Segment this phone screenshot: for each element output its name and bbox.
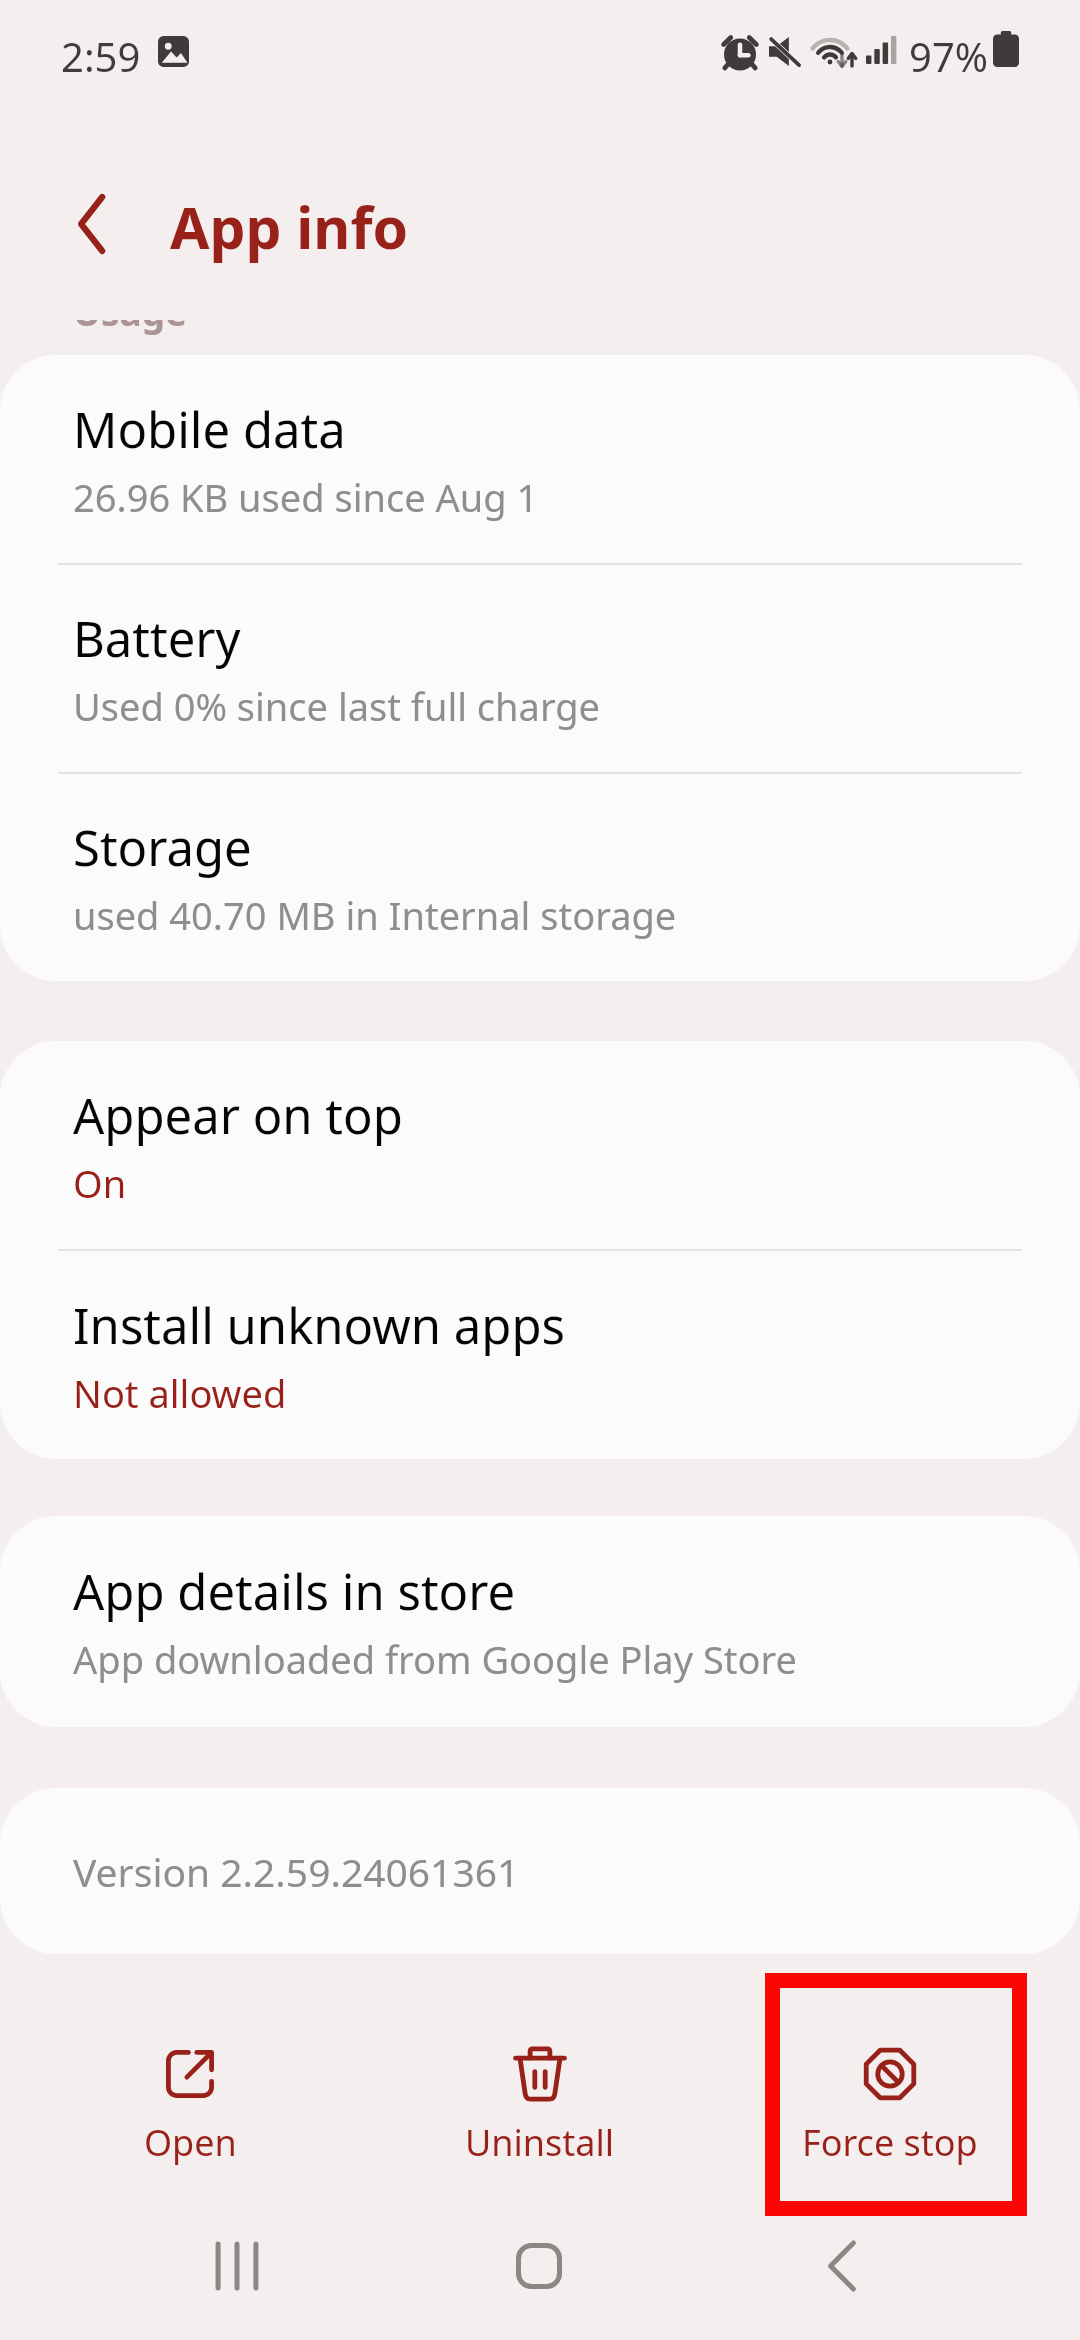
staticText: 26.96 KB used since Aug 1 bbox=[73, 471, 539, 523]
button[interactable]: Recent apps bbox=[167, 2206, 307, 2326]
staticText: App info bbox=[170, 188, 409, 266]
button[interactable]: Navigate up bbox=[50, 182, 134, 266]
staticText: 97% bbox=[909, 29, 988, 83]
staticText: Open bbox=[144, 2118, 237, 2167]
button[interactable]: Battery bbox=[0, 565, 1080, 772]
staticText: Uninstall bbox=[465, 2118, 615, 2167]
button[interactable]: Install unknown apps bbox=[0, 1251, 1080, 1459]
staticText: App downloaded from Google Play Store bbox=[73, 1633, 797, 1685]
staticText: used 40.70 MB in Internal storage bbox=[73, 889, 677, 941]
staticText: Not allowed bbox=[73, 1367, 287, 1419]
staticText: Mobile data bbox=[73, 396, 346, 463]
staticText: Version 2.2.59.24061361 bbox=[73, 1845, 520, 1898]
button[interactable]: Uninstall bbox=[430, 2024, 650, 2189]
staticText: 2:59 bbox=[61, 29, 141, 83]
button[interactable]: Home bbox=[469, 2206, 609, 2326]
button[interactable]: Appear on top bbox=[0, 1041, 1080, 1249]
button[interactable]: Mobile data bbox=[0, 355, 1080, 563]
button[interactable]: Open bbox=[80, 2024, 300, 2189]
staticText: Used 0% since last full charge bbox=[73, 680, 601, 732]
staticText: Appear on top bbox=[73, 1082, 403, 1149]
staticText: On bbox=[73, 1157, 127, 1209]
button[interactable]: App details in store bbox=[0, 1516, 1080, 1727]
staticText: Force stop bbox=[802, 2118, 978, 2167]
staticText: App details in store bbox=[73, 1558, 516, 1625]
button[interactable]: Force stop bbox=[765, 1973, 1027, 2216]
staticText: Battery bbox=[73, 605, 241, 672]
staticText: Install unknown apps bbox=[73, 1292, 566, 1359]
button[interactable]: Storage bbox=[0, 774, 1080, 981]
staticText: Usage bbox=[73, 286, 188, 336]
staticText: Storage bbox=[73, 814, 252, 881]
button[interactable]: Version 2.2.59.24061361 bbox=[0, 1788, 1080, 1954]
button[interactable]: Back bbox=[772, 2206, 912, 2326]
